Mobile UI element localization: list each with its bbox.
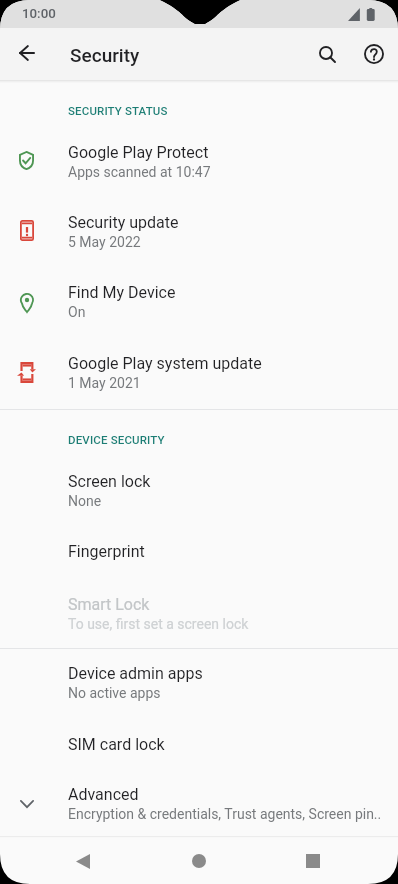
button[interactable]: Google Play Protect — [0, 124, 398, 194]
staticText: To use, first set a screen lock — [68, 616, 249, 632]
button[interactable]: Smart Lock — [0, 576, 398, 648]
button[interactable]: Fingerprint — [0, 523, 398, 576]
button[interactable]: Security update — [0, 194, 398, 264]
staticText: Google Play Protect — [68, 143, 209, 162]
staticText: Google Play system update — [68, 354, 262, 373]
button[interactable]: Google Play system update — [0, 335, 398, 405]
button[interactable]: SIM card lock — [0, 716, 398, 766]
staticText: No active apps — [68, 685, 161, 701]
staticText: Encryption & credentials, Trust agents, … — [68, 806, 382, 822]
button[interactable]: Navigate up — [3, 29, 51, 77]
staticText: DEVICE SECURITY — [68, 433, 165, 446]
button[interactable]: Home — [178, 838, 220, 884]
button[interactable]: Search — [303, 28, 351, 80]
button[interactable]: Screen lock — [0, 453, 398, 523]
button[interactable]: Device admin apps — [0, 645, 398, 715]
staticText: Smart Lock — [68, 595, 150, 614]
staticText: 10:00 — [22, 6, 56, 22]
staticText: Find My Device — [68, 283, 176, 302]
staticText: Security update — [68, 213, 179, 232]
staticText: SECURITY STATUS — [68, 104, 168, 117]
button[interactable]: Recent apps — [292, 838, 334, 884]
staticText: SIM card lock — [68, 735, 165, 754]
staticText: None — [68, 493, 102, 509]
staticText: Fingerprint — [68, 542, 145, 561]
staticText: Apps scanned at 10:47 — [68, 164, 211, 180]
button[interactable]: Help — [350, 28, 398, 80]
button[interactable]: Back — [62, 838, 104, 884]
button[interactable]: Advanced — [0, 766, 398, 836]
staticText: 1 May 2021 — [68, 375, 141, 391]
staticText: On — [68, 304, 86, 320]
staticText: Device admin apps — [68, 664, 203, 683]
staticText: Security — [70, 44, 140, 66]
staticText: Advanced — [68, 785, 139, 804]
staticText: Screen lock — [68, 472, 151, 491]
button[interactable]: Find My Device — [0, 264, 398, 334]
staticText: 5 May 2022 — [68, 234, 141, 250]
